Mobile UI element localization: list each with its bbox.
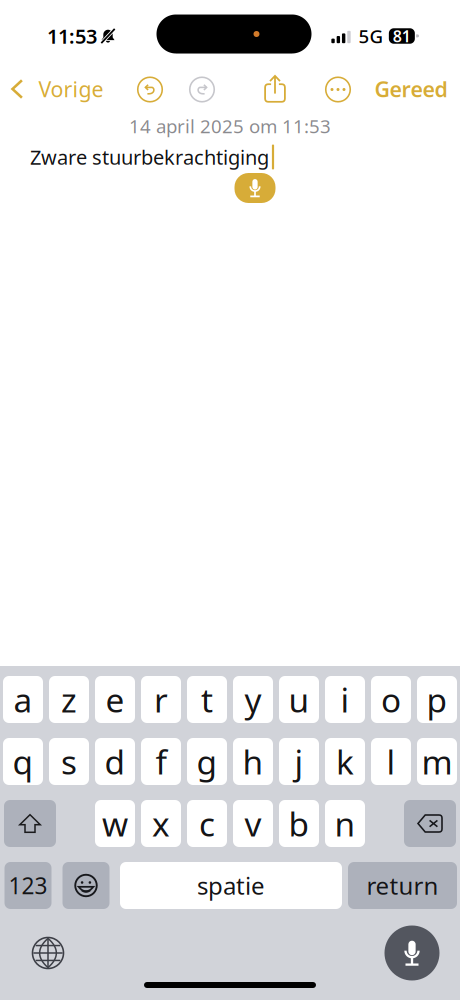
button[interactable]: Emoji <box>62 862 109 909</box>
button[interactable]: g <box>187 738 227 785</box>
staticText: n <box>334 801 355 846</box>
staticText: u <box>288 677 309 722</box>
button[interactable]: More <box>318 69 358 109</box>
button[interactable]: m <box>417 738 457 785</box>
button[interactable]: Dictate <box>384 925 439 980</box>
button[interactable]: z <box>49 676 89 723</box>
staticText: t <box>201 677 213 722</box>
button[interactable]: j <box>279 738 319 785</box>
staticText: 11:53 <box>47 23 97 49</box>
button[interactable]: h <box>233 738 273 785</box>
staticText: 14 april 2025 om 11:53 <box>129 114 331 138</box>
staticText: b <box>288 801 309 846</box>
button[interactable]: Dictate <box>234 173 275 203</box>
button[interactable]: a <box>3 676 43 723</box>
button[interactable]: q <box>3 738 43 785</box>
staticText: 81 <box>393 25 411 47</box>
button[interactable]: t <box>187 676 227 723</box>
staticText: r <box>154 677 168 722</box>
staticText: p <box>426 677 447 722</box>
staticText: m <box>421 739 452 784</box>
button[interactable]: c <box>187 800 227 847</box>
staticText: 123 <box>8 870 47 900</box>
button[interactable]: k <box>325 738 365 785</box>
staticText: h <box>242 739 263 784</box>
button[interactable]: d <box>95 738 135 785</box>
button[interactable]: return <box>348 862 457 909</box>
button[interactable]: s <box>49 738 89 785</box>
staticText: k <box>336 739 354 784</box>
button[interactable]: w <box>95 800 135 847</box>
staticText: x <box>152 801 170 846</box>
button[interactable]: b <box>279 800 319 847</box>
staticText: Zware stuurbekrachtiging <box>30 144 269 170</box>
staticText: o <box>381 677 401 722</box>
button[interactable]: e <box>95 676 135 723</box>
staticText: a <box>13 677 32 722</box>
staticText: c <box>199 801 215 846</box>
staticText: s <box>61 739 77 784</box>
button[interactable]: l <box>371 738 411 785</box>
button[interactable]: Undo <box>130 69 170 109</box>
staticText: d <box>104 739 125 784</box>
button[interactable]: y <box>233 676 273 723</box>
staticText: l <box>386 739 395 784</box>
button[interactable]: f <box>141 738 181 785</box>
button[interactable]: i <box>325 676 365 723</box>
button[interactable]: v <box>233 800 273 847</box>
button[interactable]: Share <box>255 68 295 108</box>
staticText: w <box>102 801 128 846</box>
button[interactable]: spatie <box>120 862 342 909</box>
button[interactable]: r <box>141 676 181 723</box>
button[interactable]: u <box>279 676 319 723</box>
staticText: i <box>340 677 349 722</box>
button[interactable]: Redo <box>182 69 222 109</box>
button[interactable]: o <box>371 676 411 723</box>
button[interactable]: p <box>417 676 457 723</box>
button[interactable]: Gereed <box>364 66 457 112</box>
staticText: g <box>196 739 217 784</box>
button[interactable]: 123 <box>4 862 51 909</box>
button[interactable]: x <box>141 800 181 847</box>
button[interactable]: n <box>325 800 365 847</box>
staticText: q <box>12 739 33 784</box>
button[interactable]: Next keyboard <box>26 931 70 975</box>
staticText: spatie <box>197 870 265 901</box>
button[interactable]: Shift <box>4 800 56 847</box>
staticText: e <box>105 677 124 722</box>
staticText: Vorige <box>38 75 103 103</box>
staticText: 5G <box>358 24 383 48</box>
button[interactable]: Delete <box>404 800 456 847</box>
staticText: z <box>61 677 77 722</box>
staticText: y <box>244 677 261 722</box>
staticText: v <box>244 801 261 846</box>
button[interactable]: Vorige <box>0 66 115 112</box>
staticText: j <box>294 739 303 784</box>
staticText: return <box>366 870 438 901</box>
staticText: f <box>155 739 166 784</box>
staticText: Gereed <box>374 75 447 103</box>
